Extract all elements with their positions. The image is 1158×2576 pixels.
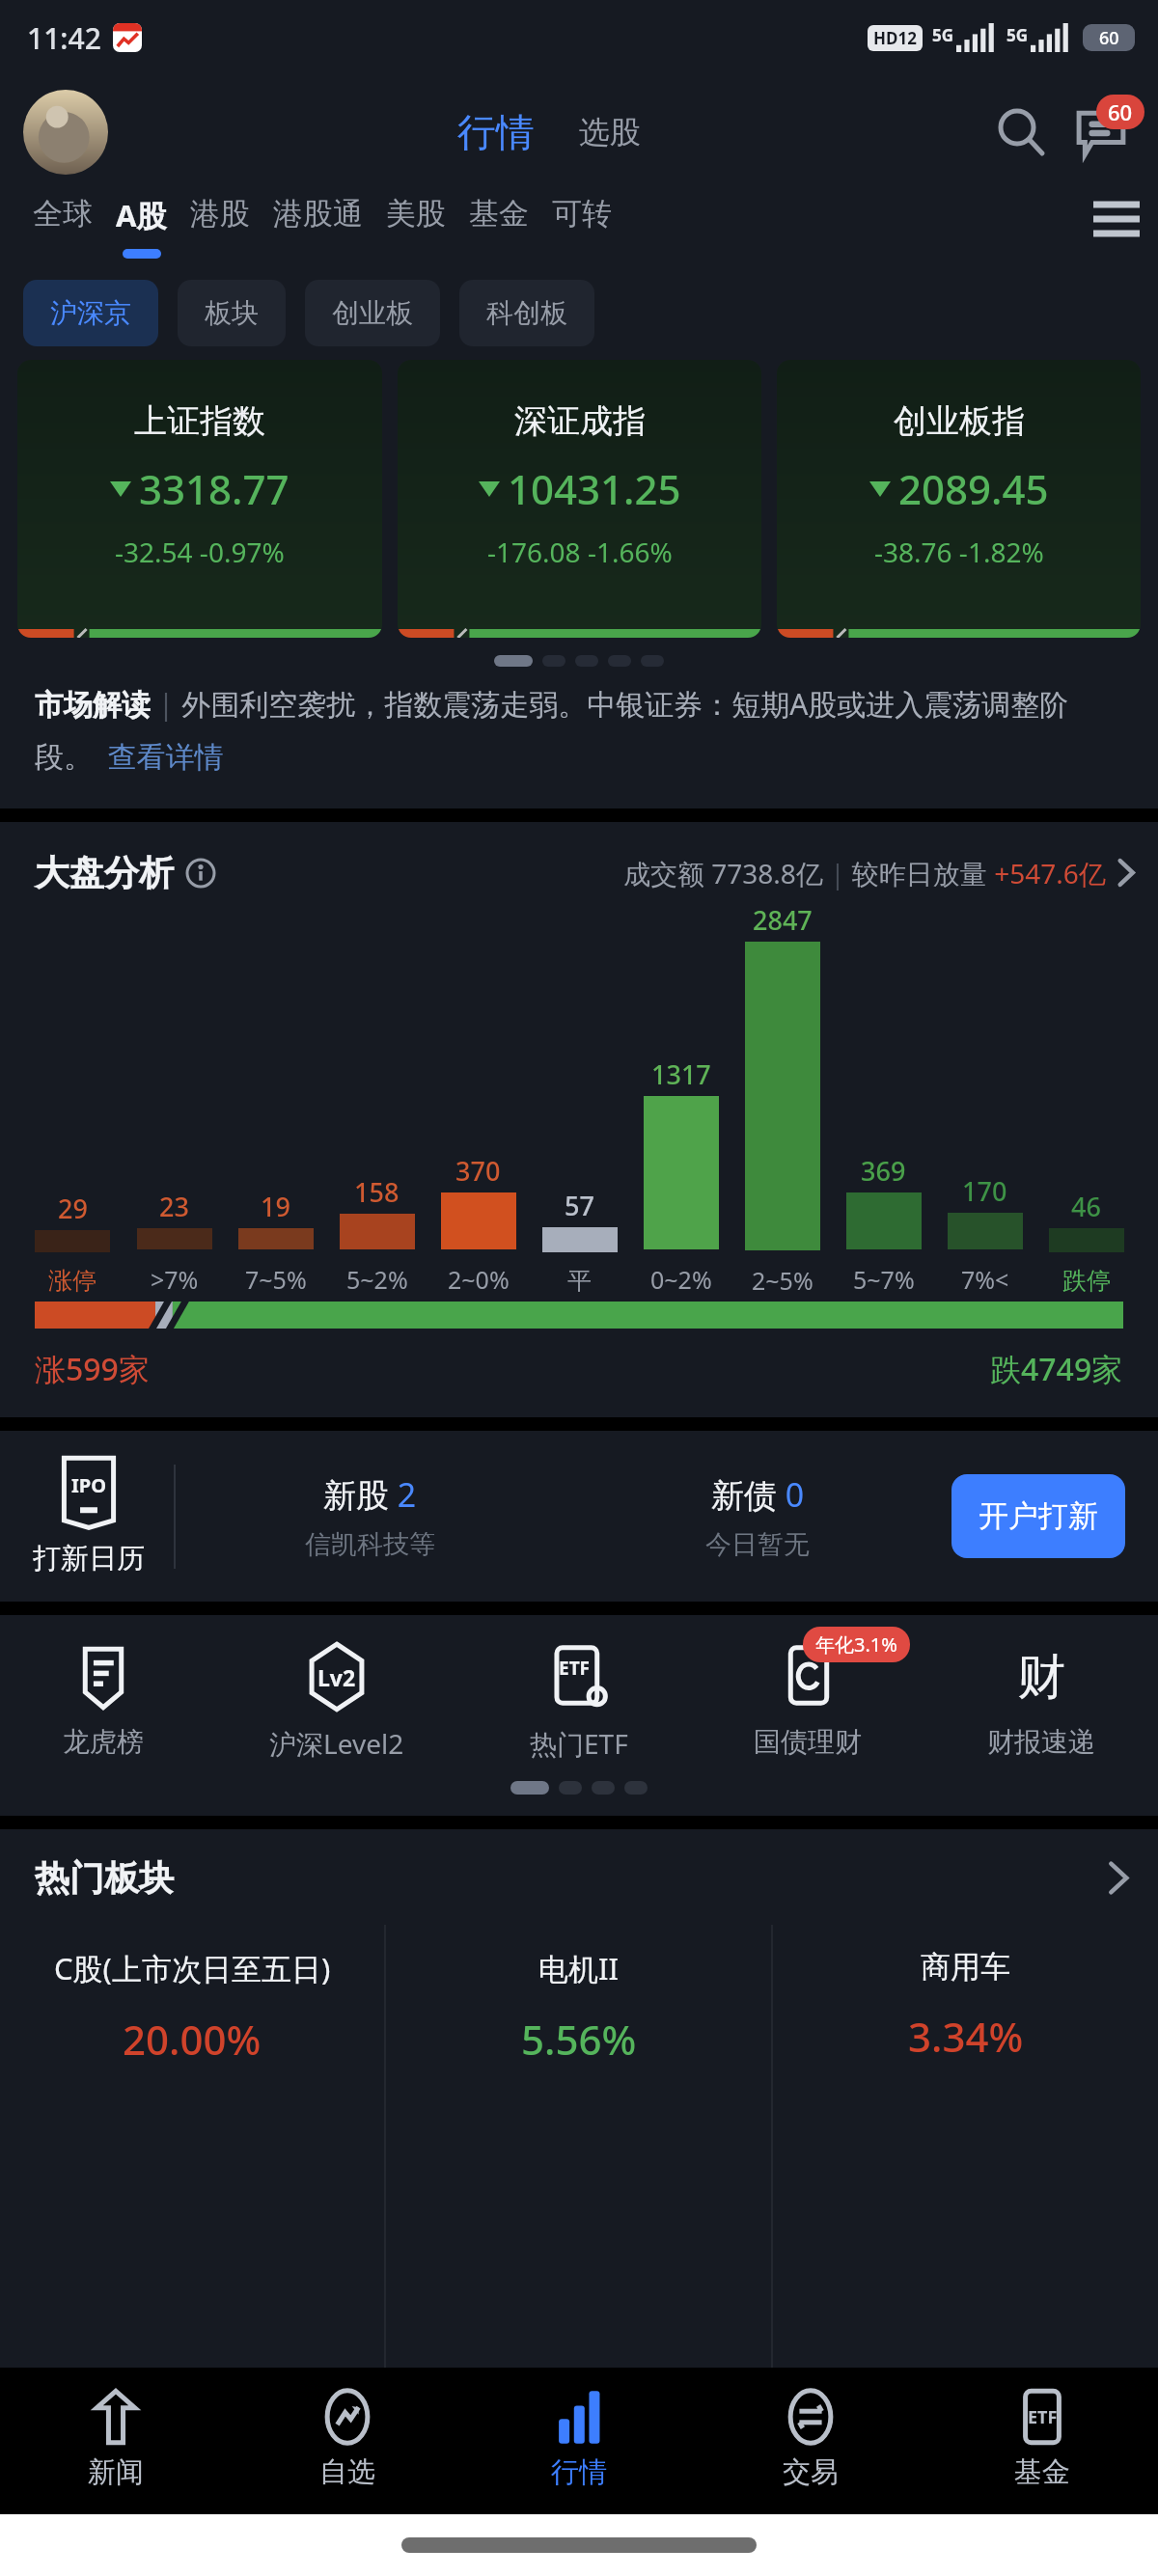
staticText: 成交额 7738.8亿 | 较昨日放量 +547.6亿 [623,855,1106,891]
staticText: 基金 [1014,2454,1070,2490]
button[interactable]: 自选 [232,2368,463,2514]
staticText: 信凯科技等 [305,1528,435,1561]
button[interactable]: 科创板 [459,280,594,346]
staticText: 今日暂无 [705,1528,810,1561]
staticText: 新债 0 [711,1472,805,1517]
button[interactable]: Search [990,101,1052,163]
button[interactable]: 新债 0 [564,1465,951,1569]
staticText: 5.56% [521,2012,637,2067]
staticText: 5G [932,24,954,46]
button[interactable]: 龙虎榜 [59,1642,148,1759]
staticText: 涨停 [48,1266,96,1296]
button[interactable]: Lv2 [265,1642,408,1762]
button[interactable]: 创业板 [305,280,440,346]
button[interactable]: 基金 [457,189,540,261]
staticText: 2~0% [448,1263,510,1296]
button[interactable]: 新股 2 [176,1465,564,1569]
staticText: ETF [559,1656,591,1681]
staticText: 46 [1071,1189,1101,1224]
staticText: 财 [1017,1647,1065,1708]
button[interactable]: 可转 [540,189,623,261]
staticText: 基金 [469,195,529,233]
button[interactable]: 创业板指 [777,360,1141,638]
staticText: 创业板 [332,296,413,330]
staticText: 19 [261,1189,290,1224]
staticText: 全球 [33,195,93,233]
staticText: 60 [1099,26,1119,50]
staticText: 可转 [552,195,612,233]
button[interactable]: 电机II [386,1925,771,2368]
button[interactable]: 选股 [573,107,647,157]
staticText: -38.76 -1.82% [874,534,1044,570]
staticText: 开户打新 [979,1497,1098,1535]
staticText: 10431.25 [508,461,681,516]
staticText: 龙虎榜 [63,1725,144,1759]
button[interactable]: 热门板块 [0,1829,1158,1925]
staticText: 29 [58,1191,88,1226]
staticText: 创业板指 [894,400,1025,442]
button[interactable]: 上证指数 [17,360,382,638]
button[interactable]: 沪深京 [23,280,158,346]
staticText: 3318.77 [139,461,289,516]
staticText: 0~2% [650,1263,712,1296]
button[interactable]: IPO [33,1456,174,1576]
staticText: 行情 [551,2454,607,2490]
button[interactable]: 港股 [179,189,262,261]
staticText: 涨599家 [35,1348,150,1390]
staticText: C股(上市次日至五日) [54,1948,331,1988]
staticText: 交易 [783,2454,839,2490]
staticText: ETF [1028,2405,1058,2429]
staticText: 2847 [753,902,813,938]
button[interactable]: More tabs [1081,189,1152,249]
staticText: 158 [354,1174,400,1210]
button[interactable]: 市场解读 | 外围利空袭扰，指数震荡走弱。中银证券：短期A股或进入震荡调整阶段。… [35,684,1125,776]
button[interactable]: ETF [926,2368,1158,2514]
button[interactable]: 板块 [178,280,286,346]
staticText: 5~2% [346,1263,408,1296]
staticText: 2089.45 [898,461,1049,516]
button[interactable]: 开户打新 [951,1474,1125,1558]
button[interactable]: 全球 [21,189,104,261]
staticText: 7%< [961,1263,1009,1296]
staticText: 财报速递 [987,1725,1095,1759]
staticText: 热门ETF [530,1725,628,1762]
button[interactable]: 年化3.1% [750,1642,866,1759]
button[interactable]: 行情 [463,2368,695,2514]
staticText: 港股通 [273,195,363,233]
staticText: 商用车 [921,1948,1010,1986]
button[interactable]: 深证成指 [398,360,761,638]
button[interactable]: Messages [1067,98,1135,166]
staticText: 57 [565,1188,594,1223]
button[interactable]: 美股 [374,189,457,261]
staticText: -32.54 -0.97% [115,534,285,570]
staticText: 新股 2 [323,1472,417,1517]
button[interactable]: ETF [526,1642,632,1762]
staticText: 1317 [651,1056,711,1092]
button[interactable]: 财 [983,1642,1099,1759]
staticText: 11:42 [27,18,101,58]
staticText: IPO [71,1472,107,1498]
staticText: 沪深Level2 [269,1725,404,1762]
button[interactable]: Profile [23,90,108,175]
staticText: 选股 [579,113,641,151]
button[interactable]: C股(上市次日至五日) [0,1925,384,2368]
button[interactable]: 行情 [452,102,540,162]
button[interactable]: 港股通 [262,189,374,261]
staticText: 行情 [457,108,535,156]
staticText: 大盘分析 [35,851,174,894]
staticText: A股 [116,195,167,235]
button[interactable]: 大盘分析 [0,822,1158,902]
staticText: >7% [151,1263,199,1296]
button[interactable]: 交易 [695,2368,926,2514]
staticText: 5~7% [853,1263,915,1296]
button[interactable]: A股 [104,189,179,264]
staticText: 沪深京 [50,296,131,330]
staticText: 打新日历 [33,1541,145,1576]
staticText: 深证成指 [514,400,646,442]
staticText: 5G [1006,24,1029,46]
staticText: 市场解读 | 外围利空袭扰，指数震荡走弱。中银证券：短期A股或进入震荡调整阶段。… [35,684,1125,776]
button[interactable]: 新闻 [0,2368,232,2514]
button[interactable]: 商用车 [773,1925,1158,2368]
staticText: 60 [1108,97,1133,126]
staticText: 板块 [205,296,259,330]
